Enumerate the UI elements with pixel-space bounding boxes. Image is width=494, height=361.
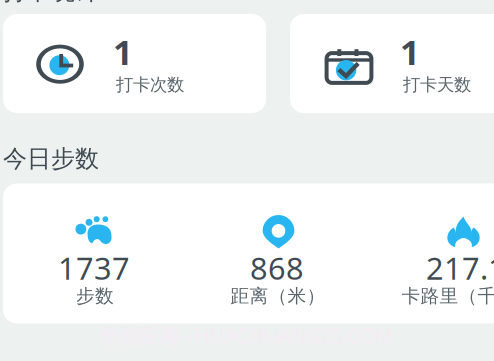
button[interactable]: 1: [290, 14, 494, 113]
staticText: 距离（米）: [230, 284, 325, 307]
staticText: 1737: [58, 247, 130, 288]
staticText: 打卡次数: [116, 74, 184, 95]
staticText: 868: [250, 247, 304, 288]
staticText: 卡路里（千卡）: [401, 284, 494, 307]
staticText: 打卡统计: [3, 0, 99, 6]
staticText: 1: [400, 28, 420, 74]
staticText: 步数: [76, 284, 114, 307]
button[interactable]: 1: [3, 14, 266, 113]
staticText: 217.1: [426, 247, 494, 288]
staticText: 1: [113, 28, 133, 74]
staticText: 华创应用 - HUACHUANGZS.COM: [99, 322, 393, 349]
staticText: 打卡天数: [403, 74, 471, 95]
staticText: 今日步数: [3, 144, 99, 173]
